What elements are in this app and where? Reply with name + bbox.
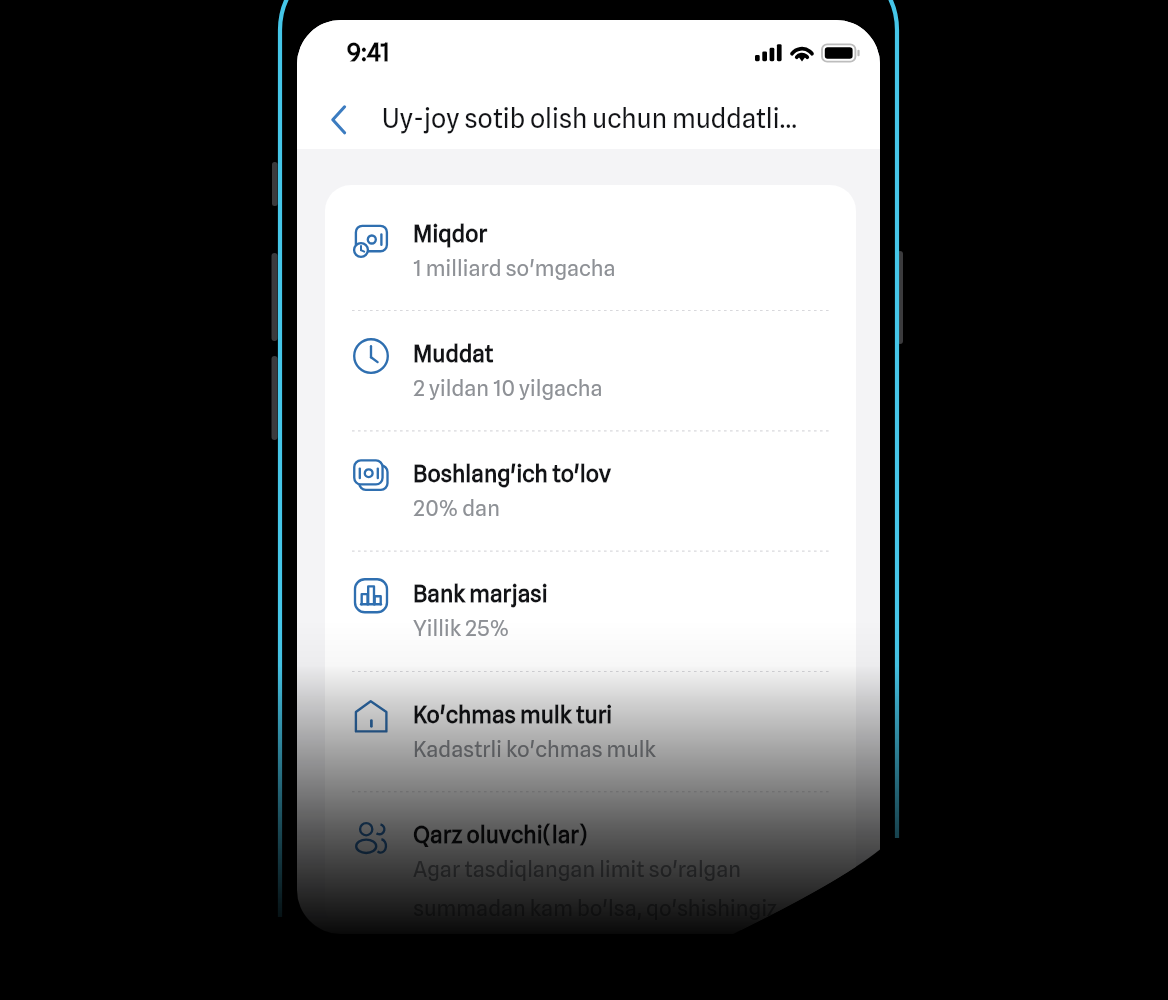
staticText: 2 yildan 10 yilgacha — [413, 375, 603, 401]
staticText: Uy-joy sotib olish uchun muddatli… — [382, 102, 797, 134]
staticText: 9:41 — [347, 37, 390, 67]
button[interactable]: Back — [310, 94, 362, 146]
button[interactable]: Boshlang'ich to'lov — [325, 451, 856, 571]
button[interactable]: Ko'chmas mulk turi — [325, 692, 856, 812]
staticText: Muddat — [413, 340, 494, 368]
staticText: 20% dan — [413, 495, 500, 521]
staticText: Yillik 25% — [413, 615, 510, 641]
button[interactable]: Miqdor — [325, 211, 856, 331]
staticText: Ko'chmas mulk turi — [413, 701, 613, 729]
button[interactable]: Muddat — [325, 331, 856, 451]
button[interactable]: Qarz oluvchi(lar) — [325, 812, 856, 930]
button[interactable]: Bank marjasi — [325, 571, 856, 691]
staticText: 1 milliard so'mgacha — [413, 255, 616, 281]
staticText: Boshlang'ich to'lov — [413, 460, 612, 488]
staticText: Bank marjasi — [413, 580, 548, 608]
staticText: Qarz oluvchi(lar) — [413, 821, 588, 849]
staticText: Agar tasdiqlangan limit so'ralgan summad… — [413, 856, 778, 921]
staticText: Kadastrli ko'chmas mulk — [413, 736, 656, 762]
staticText: Miqdor — [413, 220, 488, 248]
